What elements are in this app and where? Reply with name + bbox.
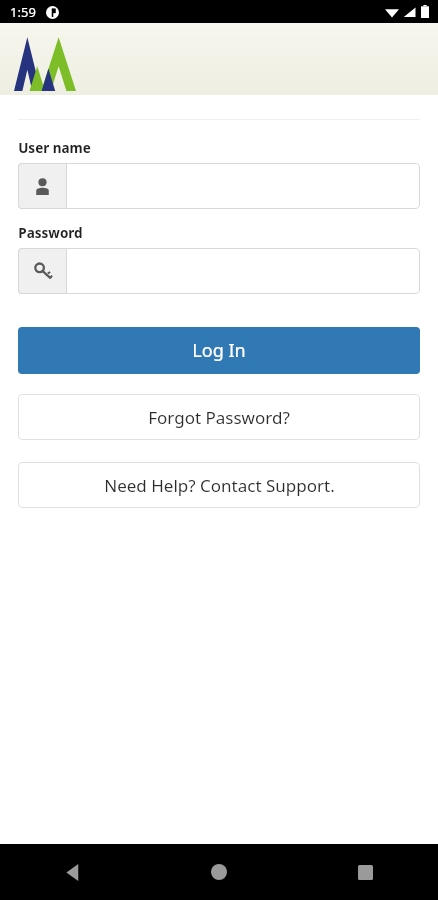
button[interactable]: Back (0, 844, 146, 900)
button[interactable]: Home (146, 844, 292, 900)
staticText: Log In (192, 338, 246, 363)
button[interactable]: User name (18, 163, 420, 209)
staticText: Need Help? Contact Support. (104, 474, 335, 497)
button[interactable]: Log In (18, 327, 420, 374)
button[interactable]: Forgot Password? (18, 394, 420, 440)
staticText: Forgot Password? (148, 406, 290, 429)
button[interactable]: Password (18, 248, 420, 294)
button[interactable]: Recent apps (292, 844, 438, 900)
staticText: User name (18, 139, 91, 157)
staticText: 1:59 (10, 3, 36, 21)
staticText: Password (18, 224, 83, 242)
button[interactable]: Need Help? Contact Support. (18, 462, 420, 508)
